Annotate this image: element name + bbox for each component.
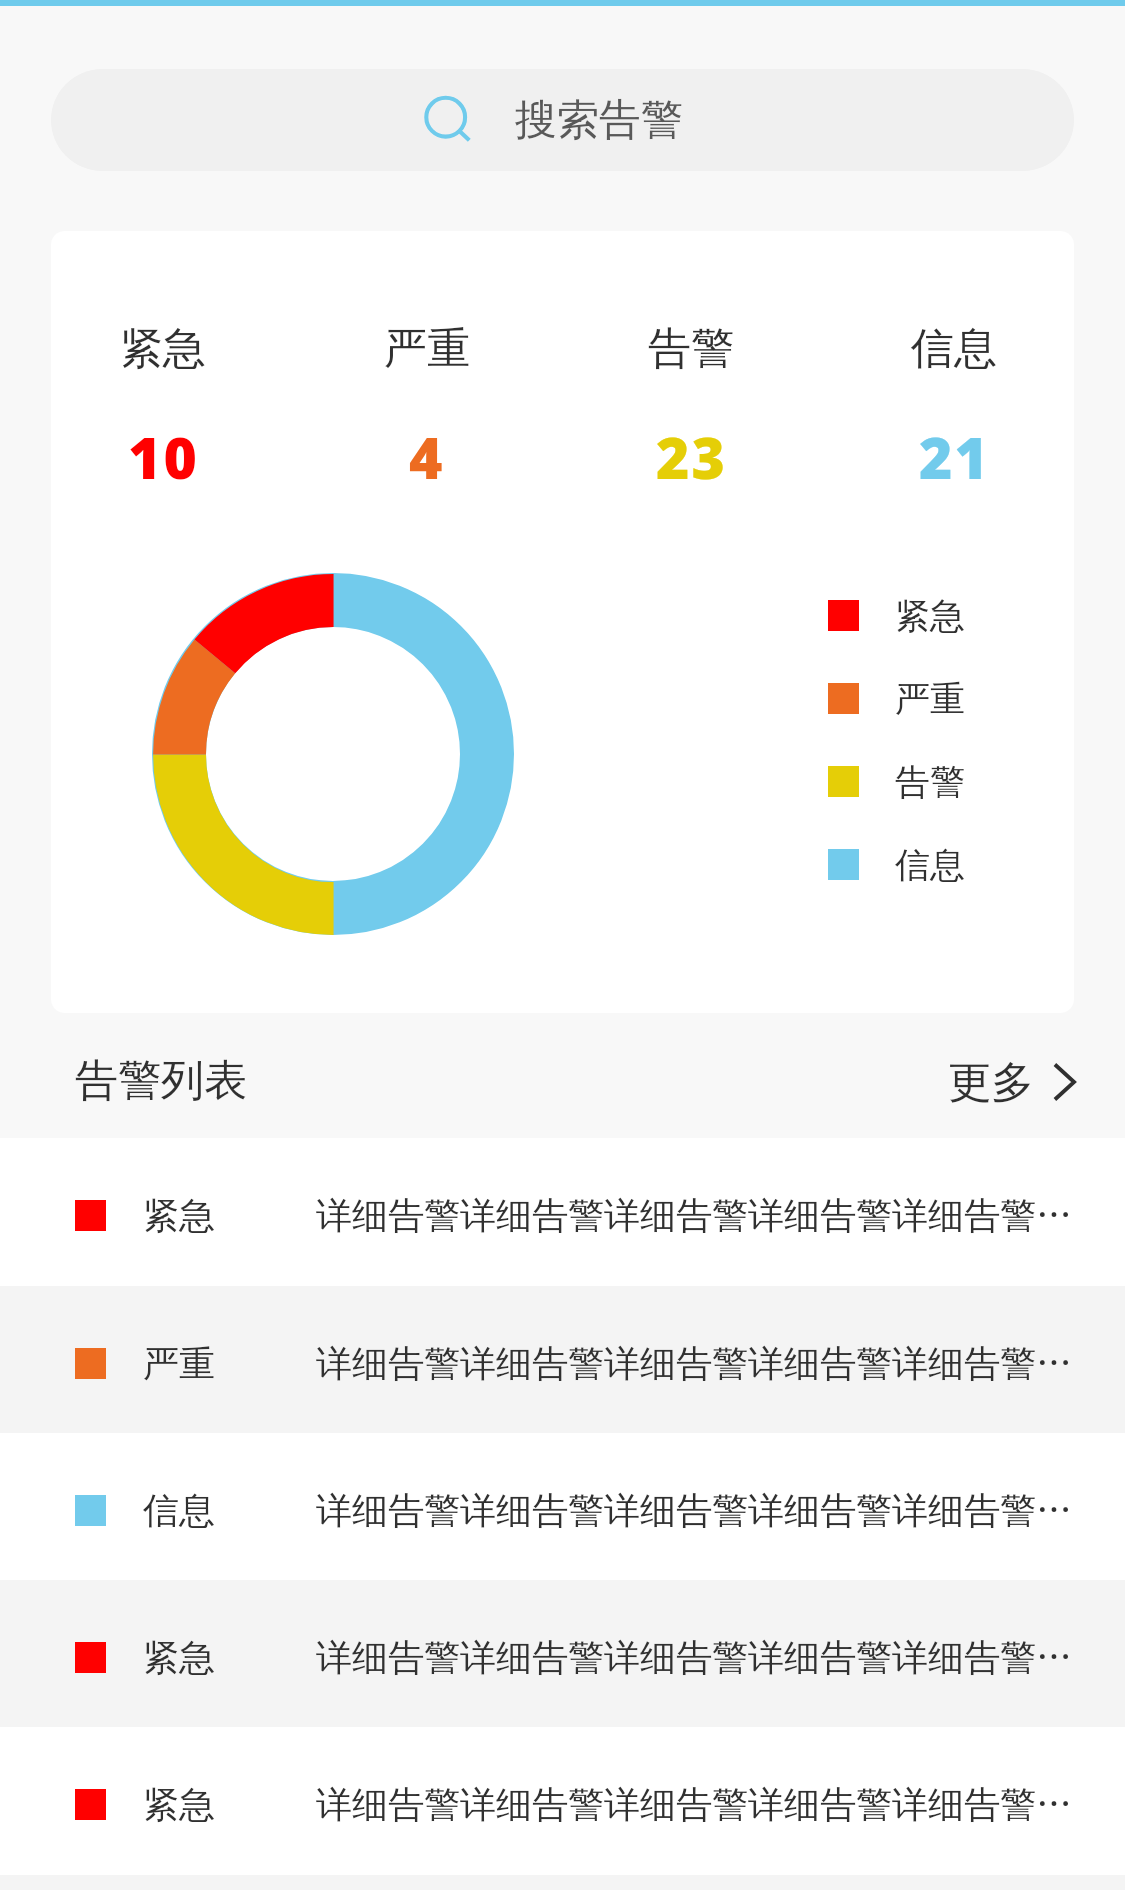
staticText: 信息 (895, 843, 965, 887)
button[interactable]: 信息 (823, 322, 1085, 496)
button[interactable]: 紧急 (0, 1138, 1125, 1286)
staticText: 10 (128, 418, 199, 496)
button[interactable]: 信息 (0, 1433, 1125, 1580)
staticText: 紧急 (143, 1782, 215, 1827)
staticText: 21 (919, 418, 990, 496)
staticText: 信息 (911, 322, 997, 376)
button[interactable]: 严重 (295, 322, 559, 496)
staticText: 4 (409, 418, 445, 496)
staticText: 详细告警详细告警详细告警详细告警详细告警详细告警 (316, 1635, 1093, 1680)
staticText: 紧急 (895, 594, 965, 638)
button[interactable]: 紧急 (0, 1727, 1125, 1875)
staticText: 更多 (948, 1056, 1034, 1110)
staticText: 告警 (648, 322, 734, 376)
button[interactable]: 紧急 (828, 574, 965, 657)
staticText: 详细告警详细告警详细告警详细告警详细告警详细告警 (316, 1488, 1093, 1533)
button[interactable]: 告警 (828, 740, 965, 823)
staticText: 详细告警详细告警详细告警详细告警详细告警详细告警 (316, 1782, 1093, 1827)
staticText: 告警 (895, 760, 965, 804)
button[interactable]: 严重 (828, 657, 965, 740)
button[interactable]: 信息 (828, 823, 965, 906)
staticText: 告警列表 (75, 1054, 247, 1108)
staticText: 信息 (143, 1488, 215, 1533)
staticText: 严重 (143, 1341, 215, 1386)
button[interactable]: 告警 (559, 322, 823, 496)
staticText: 紧急 (143, 1635, 215, 1680)
other: More (1053, 1051, 1076, 1101)
staticText: 紧急 (143, 1193, 215, 1238)
other: Search (424, 96, 472, 144)
staticText: 紧急 (120, 322, 206, 376)
staticText: 严重 (384, 322, 470, 376)
staticText: 详细告警详细告警详细告警详细告警详细告警详细告警 (316, 1193, 1093, 1238)
button[interactable]: Search (51, 69, 1074, 171)
button[interactable]: 更多 (948, 1041, 1076, 1110)
staticText: 严重 (895, 677, 965, 721)
button[interactable]: 严重 (0, 1286, 1125, 1433)
button[interactable]: 紧急 (31, 322, 295, 496)
staticText: 详细告警详细告警详细告警详细告警详细告警详细告警 (316, 1341, 1093, 1386)
button[interactable]: 紧急 (0, 1580, 1125, 1727)
staticText: 搜索告警 (515, 94, 683, 147)
staticText: 23 (656, 418, 727, 496)
